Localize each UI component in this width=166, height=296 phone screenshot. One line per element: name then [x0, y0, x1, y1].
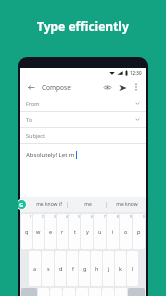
staticText: 5: [78, 215, 80, 219]
button[interactable]: Grammar assistant: [18, 199, 27, 210]
staticText: 2: [42, 215, 44, 219]
staticText: a: [33, 265, 37, 272]
button[interactable]: a: [29, 251, 41, 286]
button[interactable]: me know: [107, 197, 146, 212]
staticText: G: [19, 201, 24, 209]
staticText: i: [112, 228, 114, 235]
staticText: 0: [143, 215, 145, 219]
button[interactable]: More options: [131, 82, 141, 92]
button[interactable]: f: [67, 251, 78, 286]
staticText: 8: [117, 215, 119, 219]
staticText: o: [124, 228, 128, 235]
staticText: t: [74, 228, 76, 235]
staticText: Type efficiently: [37, 18, 129, 34]
staticText: l: [132, 265, 134, 272]
staticText: e: [49, 228, 53, 235]
staticText: Compose: [42, 83, 71, 92]
button[interactable]: t: [69, 214, 80, 249]
button[interactable]: p: [133, 214, 145, 249]
button[interactable]: Back: [25, 81, 37, 93]
button[interactable]: o: [120, 214, 132, 249]
button[interactable]: r: [57, 214, 68, 249]
staticText: p: [137, 228, 141, 235]
staticText: w: [36, 228, 41, 235]
staticText: me: [84, 201, 92, 208]
staticText: d: [59, 265, 63, 272]
button[interactable]: k: [115, 251, 126, 286]
staticText: 6: [91, 215, 93, 219]
button[interactable]: To: [26, 112, 140, 127]
staticText: 9: [130, 215, 132, 219]
staticText: 7: [104, 215, 106, 219]
button[interactable]: g: [79, 251, 90, 286]
button[interactable]: me: [68, 197, 107, 212]
button[interactable]: y: [81, 214, 93, 249]
staticText: j: [108, 265, 110, 272]
staticText: From: [26, 100, 40, 107]
button[interactable]: u: [94, 214, 106, 249]
button[interactable]: w: [33, 214, 44, 249]
button[interactable]: Send: [117, 82, 128, 93]
button[interactable]: Attach: [102, 82, 113, 93]
button[interactable]: Subject: [26, 128, 140, 143]
staticText: s: [47, 265, 50, 272]
staticText: 1: [30, 215, 32, 219]
button[interactable]: i: [107, 214, 119, 249]
button[interactable]: j: [103, 251, 114, 286]
staticText: q: [25, 228, 29, 235]
staticText: y: [86, 228, 89, 235]
staticText: Subject: [26, 132, 45, 139]
staticText: Absolutely! Let m: [26, 151, 75, 159]
button[interactable]: e: [45, 214, 56, 249]
staticText: 3: [54, 215, 56, 219]
button[interactable]: l: [127, 251, 138, 286]
staticText: 4: [66, 215, 68, 219]
staticText: me know: [116, 201, 138, 208]
staticText: u: [98, 228, 102, 235]
staticText: To: [26, 116, 33, 123]
staticText: h: [95, 265, 99, 272]
staticText: k: [119, 265, 122, 272]
staticText: r: [61, 228, 64, 235]
button[interactable]: d: [55, 251, 66, 286]
staticText: 12:30: [130, 70, 142, 76]
button[interactable]: From: [26, 96, 140, 111]
button[interactable]: me know if: [30, 197, 68, 212]
staticText: me know if: [36, 201, 62, 208]
button[interactable]: q: [21, 214, 32, 249]
staticText: g: [83, 265, 87, 272]
button[interactable]: s: [42, 251, 54, 286]
button[interactable]: h: [91, 251, 102, 286]
staticText: f: [72, 265, 74, 272]
